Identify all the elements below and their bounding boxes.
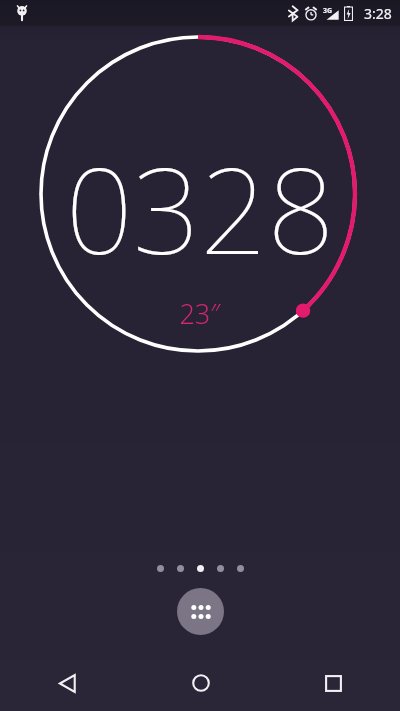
staticText: 3G <box>323 6 333 16</box>
button[interactable]: Apps <box>177 588 224 635</box>
staticText: 0328 <box>65 128 335 289</box>
button[interactable]: Home <box>134 655 267 711</box>
button[interactable]: Back <box>0 655 134 711</box>
button[interactable]: Recent apps <box>267 655 400 711</box>
button[interactable]: 0328 <box>0 0 400 400</box>
staticText: 23″ <box>179 295 221 332</box>
staticText: 3:28 <box>364 4 392 23</box>
